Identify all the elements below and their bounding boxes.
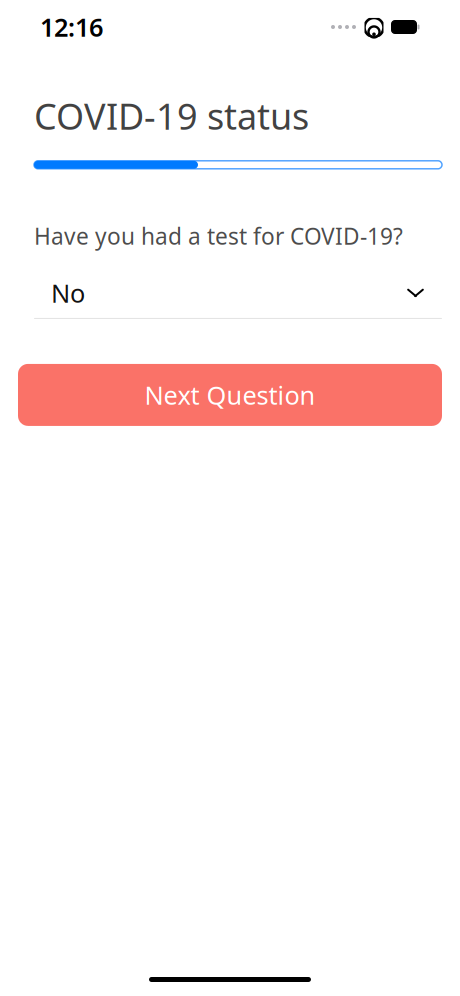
button[interactable]: No xyxy=(34,268,442,319)
staticText: Next Question xyxy=(144,378,315,412)
button[interactable]: Next Question xyxy=(18,364,442,426)
staticText: 12:16 xyxy=(40,10,103,44)
staticText: COVID-19 status xyxy=(34,92,309,140)
staticText: No xyxy=(51,276,85,310)
staticText: Have you had a test for COVID-19? xyxy=(34,221,403,251)
